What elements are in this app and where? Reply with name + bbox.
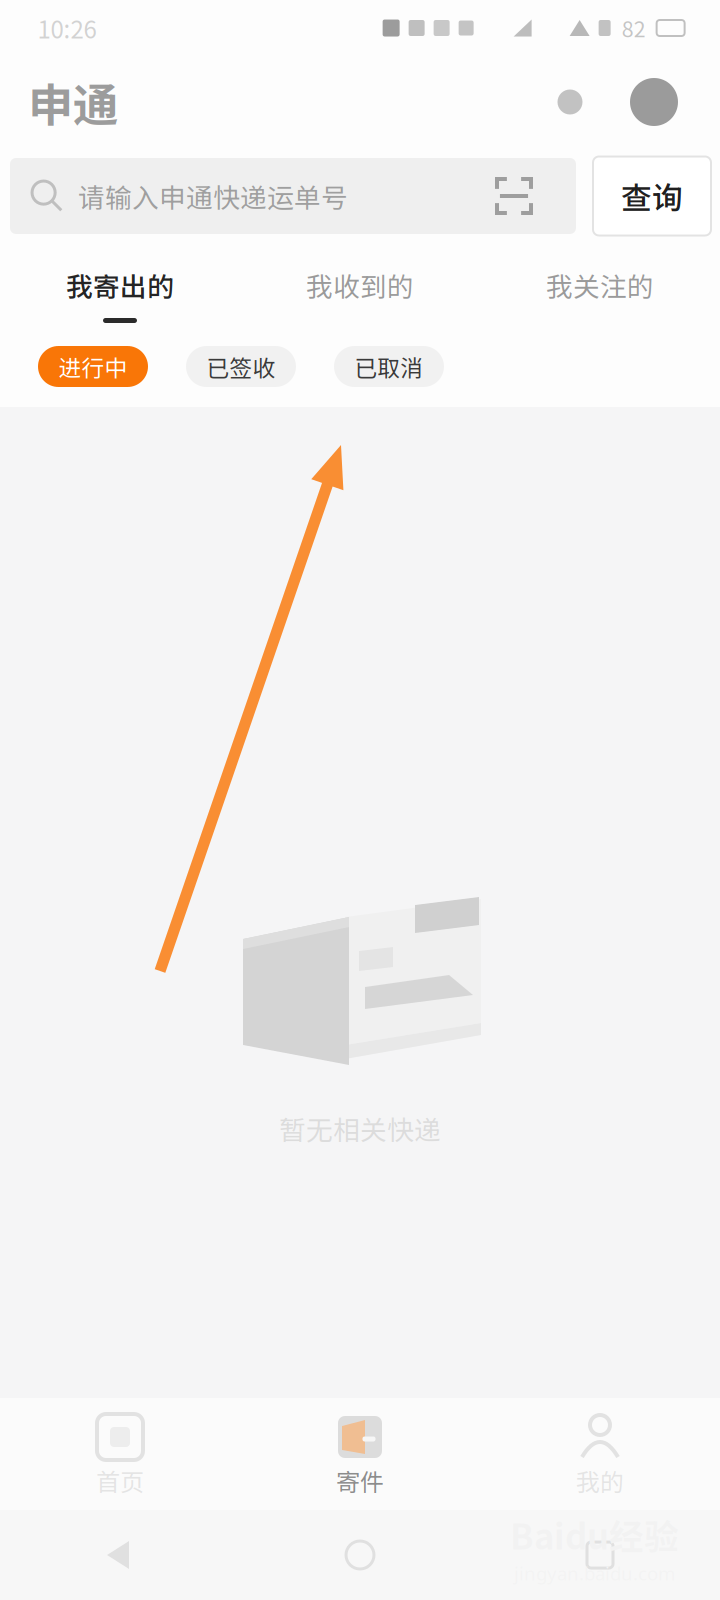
button[interactable]: 寄件 xyxy=(240,1398,480,1510)
button[interactable]: 已取消 xyxy=(334,346,444,387)
staticText: 寄件 xyxy=(336,1463,384,1498)
button[interactable]: Scan xyxy=(495,177,556,215)
staticText: 首页 xyxy=(96,1463,144,1498)
staticText: 请输入申通快递运单号 xyxy=(78,177,348,215)
staticText: 暂无相关快递 xyxy=(279,1109,441,1148)
button[interactable]: 我关注的 xyxy=(480,244,720,334)
staticText: 我的 xyxy=(576,1463,624,1498)
staticText: 我寄出的 xyxy=(66,266,174,304)
staticText: 申通 xyxy=(28,69,118,135)
button[interactable]: 进行中 xyxy=(38,346,148,387)
button[interactable]: 查询 xyxy=(593,156,711,235)
staticText: 查询 xyxy=(621,174,683,218)
staticText: 82 xyxy=(622,13,646,43)
staticText: jingyan.baidu.com xyxy=(514,1561,675,1586)
button[interactable]: 首页 xyxy=(0,1398,240,1510)
staticText: 进行中 xyxy=(58,350,127,383)
staticText: 我关注的 xyxy=(546,266,654,304)
button[interactable]: Messages xyxy=(542,74,598,130)
button[interactable]: 我收到的 xyxy=(240,244,480,334)
staticText: 10:26 xyxy=(37,11,96,45)
button[interactable]: Profile xyxy=(626,74,682,130)
staticText: 已签收 xyxy=(206,350,275,383)
staticText: 已取消 xyxy=(354,350,423,383)
button[interactable]: 我的 xyxy=(480,1398,720,1510)
staticText: Baidu经验 xyxy=(510,1509,679,1560)
button[interactable]: 已签收 xyxy=(186,346,296,387)
staticText: 我收到的 xyxy=(306,266,414,304)
button[interactable]: 我寄出的 xyxy=(0,244,240,334)
